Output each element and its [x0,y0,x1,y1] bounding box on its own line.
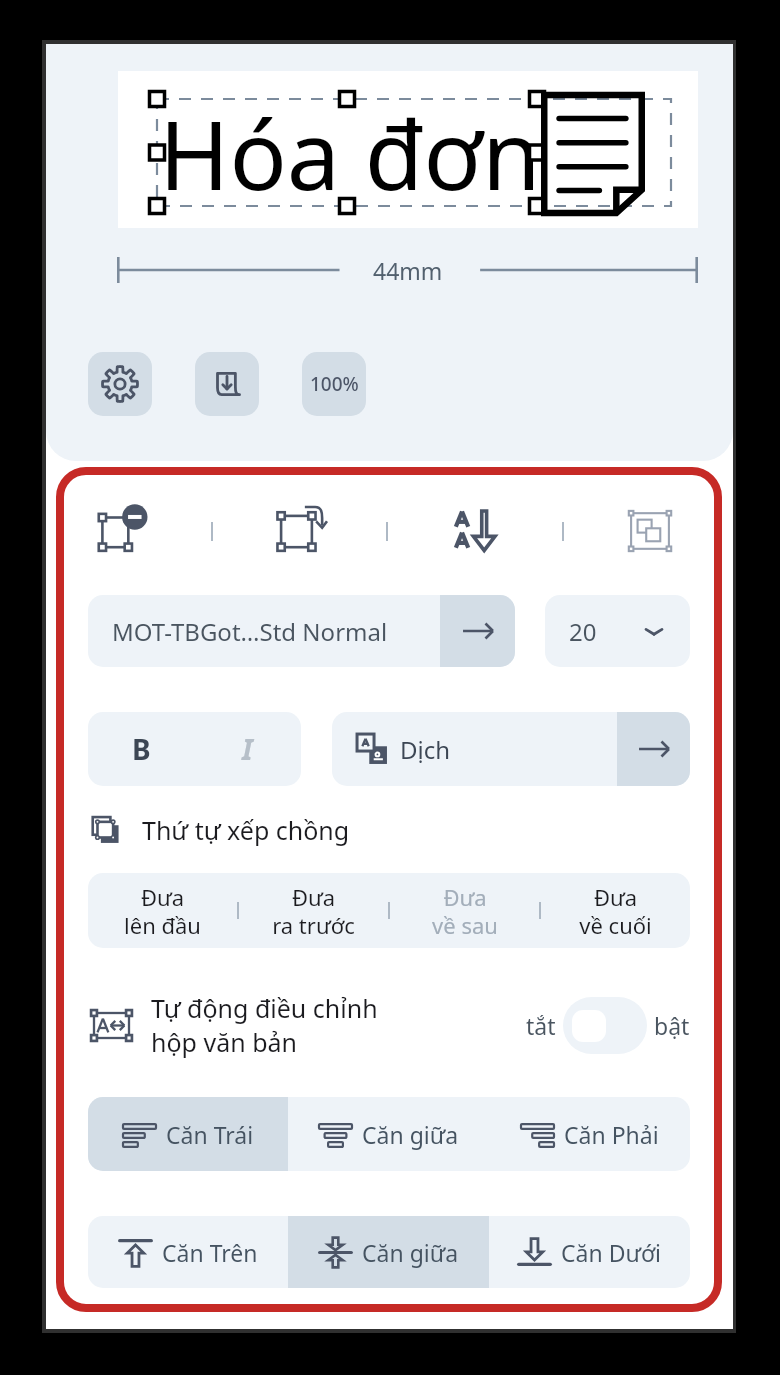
staticText: Căn giữa [362,1119,459,1150]
staticText: 100% [310,371,359,397]
button[interactable]: Đưa về cuối [541,873,690,948]
button[interactable]: 100% [302,352,366,416]
button[interactable]: I [194,712,301,786]
button[interactable]: Group objects [614,497,686,565]
staticText: Căn Dưới [561,1237,662,1268]
button[interactable]: MOT-TBGot…Std Normal [88,595,515,667]
staticText: Căn Phải [564,1119,659,1150]
staticText: Thứ tự xếp chồng [142,813,350,847]
button[interactable]: Đưa về sau [390,873,539,948]
staticText: Đưa ra trước [272,882,355,940]
staticText: 20 [569,615,597,648]
button[interactable]: Text size [439,497,511,565]
button[interactable]: Open font list [440,595,515,667]
staticText: Căn giữa [362,1237,459,1268]
button[interactable]: B [88,712,194,786]
staticText: Căn Trái [166,1119,254,1150]
staticText: I [242,730,253,768]
staticText: Đưa về cuối [579,882,652,940]
button[interactable]: Settings [88,352,152,416]
staticText: MOT-TBGot…Std Normal [112,615,440,648]
button[interactable]: Đưa lên đầu [88,873,237,948]
button[interactable]: Căn Trên [88,1216,288,1288]
button[interactable]: 20 [545,595,690,667]
staticText: bật [654,1010,690,1041]
button[interactable]: Căn giữa [288,1097,489,1171]
button[interactable]: Auto fit text box toggle [563,997,647,1054]
staticText: 44mm [373,255,443,285]
staticText: Căn Trên [162,1237,258,1268]
button[interactable]: Delete selection [88,497,160,565]
staticText: Hóa đơn [159,88,541,217]
staticText: Dịch [400,733,617,766]
staticText: tắt [526,1010,556,1041]
button[interactable]: Rotate selection [264,497,336,565]
button[interactable]: Open translate [617,712,690,786]
staticText: Đưa lên đầu [124,882,201,940]
button[interactable]: Căn Trái [88,1097,288,1171]
staticText: Đưa về sau [432,882,498,940]
button[interactable]: Dịch [332,712,690,786]
button[interactable]: Căn Dưới [489,1216,690,1288]
staticText: B [132,730,151,768]
button[interactable]: Đưa ra trước [239,873,388,948]
button[interactable]: Căn Phải [489,1097,690,1171]
staticText: Tự động điều chỉnh hộp văn bản [151,991,378,1060]
button[interactable]: Save [195,352,259,416]
button[interactable]: Căn giữa [288,1216,489,1288]
